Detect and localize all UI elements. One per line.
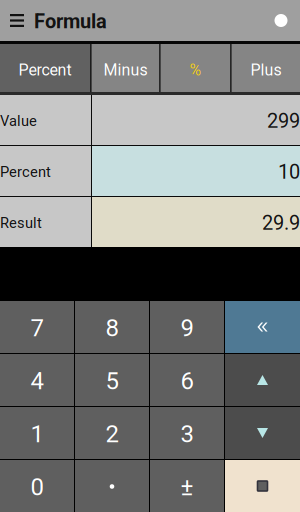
staticText: 0 — [30, 473, 43, 501]
button[interactable]: 9 — [150, 301, 224, 353]
button[interactable]: Percent — [0, 146, 300, 196]
button[interactable]: ± — [150, 460, 224, 512]
staticText: Percent — [0, 163, 51, 181]
button[interactable]: More options — [262, 0, 300, 41]
staticText: Plus — [250, 61, 281, 79]
button[interactable]: Done — [225, 460, 300, 512]
staticText: 7 — [30, 314, 43, 342]
staticText: 9 — [180, 314, 193, 342]
button[interactable]: 8 — [75, 301, 149, 353]
staticText: Percent — [18, 61, 71, 79]
staticText: 4 — [30, 367, 43, 395]
button[interactable]: 7 — [0, 301, 74, 353]
button[interactable]: Previous field — [225, 354, 300, 406]
staticText: Result — [0, 214, 42, 232]
staticText: Value — [0, 112, 37, 130]
staticText: ± — [180, 473, 193, 501]
staticText: Minus — [103, 61, 147, 79]
button[interactable]: 6 — [150, 354, 224, 406]
button[interactable]: Minus — [91, 44, 159, 92]
button[interactable]: 2 — [75, 407, 149, 459]
button[interactable]: 1 — [0, 407, 74, 459]
button[interactable]: 4 — [0, 354, 74, 406]
staticText: 3 — [180, 420, 193, 448]
button[interactable]: Value — [0, 95, 300, 145]
staticText: 29.9 — [262, 211, 300, 235]
button[interactable]: 3 — [150, 407, 224, 459]
staticText: 299 — [267, 109, 300, 133]
staticText: 6 — [180, 367, 193, 395]
button[interactable]: Next field — [225, 407, 300, 459]
staticText: % — [189, 61, 201, 79]
button[interactable]: % — [160, 44, 230, 92]
staticText: Formula — [34, 10, 107, 33]
staticText: 1 — [30, 420, 43, 448]
button[interactable]: Decimal point — [75, 460, 149, 512]
button[interactable]: Percent — [0, 44, 90, 92]
staticText: 10 — [278, 160, 300, 184]
staticText: 2 — [105, 420, 118, 448]
button[interactable]: Backspace — [225, 301, 300, 353]
button[interactable]: Result — [0, 197, 300, 247]
staticText: 5 — [105, 367, 118, 395]
button[interactable]: 5 — [75, 354, 149, 406]
button[interactable]: 0 — [0, 460, 74, 512]
staticText: 8 — [105, 314, 118, 342]
button[interactable]: Plus — [231, 44, 300, 92]
button[interactable]: Menu — [0, 0, 34, 41]
